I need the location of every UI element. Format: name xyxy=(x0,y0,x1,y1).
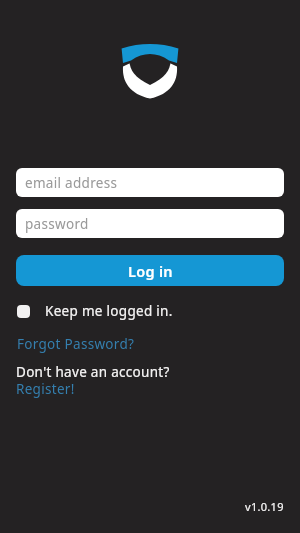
button[interactable]: email address xyxy=(16,168,284,197)
staticText: v1.0.19 xyxy=(245,499,284,514)
button[interactable]: password xyxy=(16,209,284,238)
button[interactable]: Forgot Password? xyxy=(17,335,135,353)
button[interactable]: Register! xyxy=(16,380,75,398)
staticText: password xyxy=(25,215,89,233)
staticText: Don't have an account? xyxy=(16,363,170,381)
staticText: Keep me logged in. xyxy=(45,302,173,320)
button[interactable]: Keep me logged in. xyxy=(17,298,173,324)
button[interactable]: Log in xyxy=(16,255,284,286)
staticText: email address xyxy=(25,174,118,192)
staticText: Log in xyxy=(128,261,173,281)
